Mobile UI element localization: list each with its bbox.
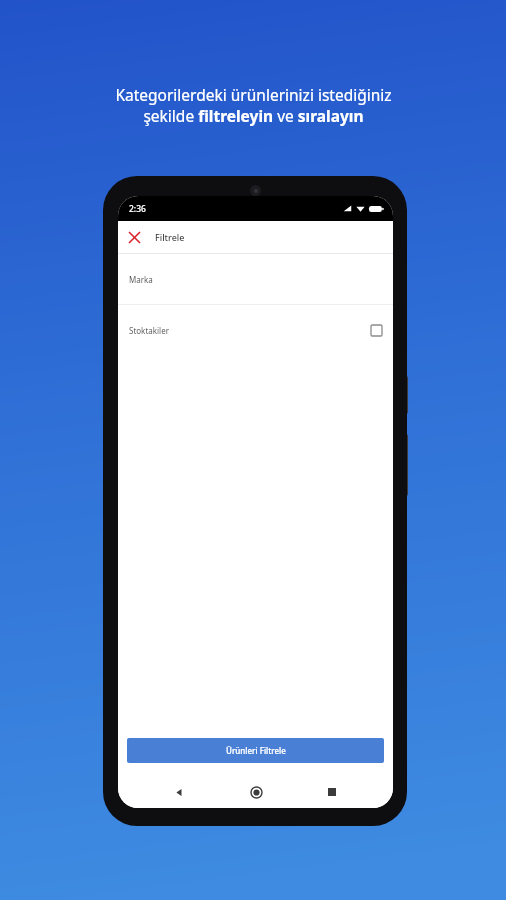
button[interactable]: Ürünleri Filtrele xyxy=(127,738,384,763)
staticText: Kategorilerdeki ürünlerinizi istediğiniz… xyxy=(115,84,392,127)
button[interactable]: Kapat xyxy=(118,221,150,253)
button[interactable]: Stoktakiler xyxy=(118,305,393,355)
staticText: Stoktakiler xyxy=(129,325,169,336)
staticText: 2:36 xyxy=(129,203,146,215)
button[interactable]: Ana ekran xyxy=(241,777,271,807)
staticText: Marka xyxy=(129,274,153,285)
staticText: Ürünleri Filtrele xyxy=(226,745,286,756)
staticText: Filtrele xyxy=(155,231,185,243)
button[interactable]: Marka xyxy=(118,254,393,304)
button[interactable]: Son uygulamalar xyxy=(317,777,347,807)
button[interactable]: Geri xyxy=(164,777,194,807)
